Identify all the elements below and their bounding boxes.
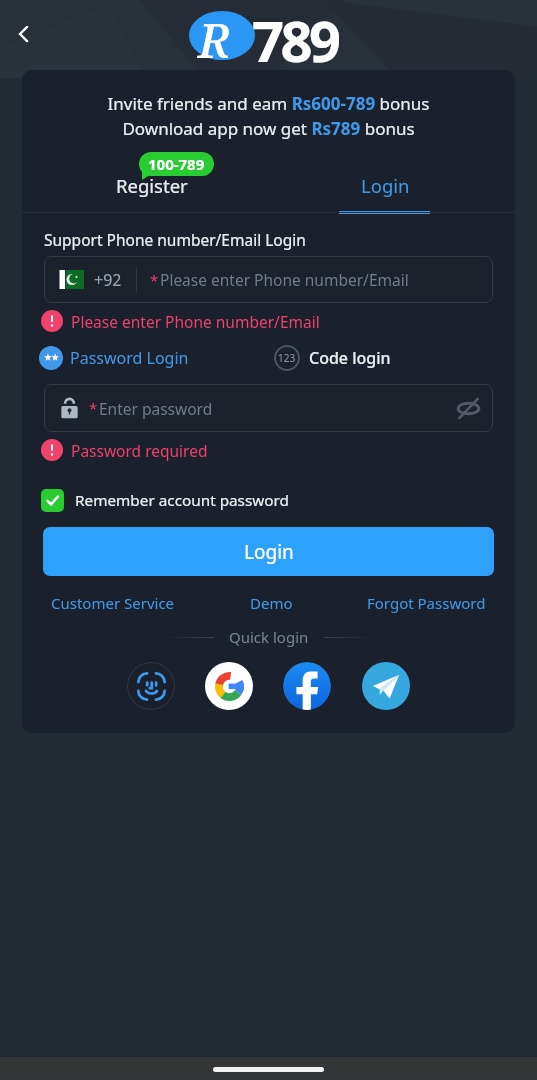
button[interactable]: Customer Service [49, 590, 177, 616]
staticText: Enter password [99, 398, 213, 419]
staticText: Customer Service [51, 593, 175, 613]
staticText: Demo [250, 593, 293, 613]
button[interactable]: 123 [274, 345, 391, 371]
button[interactable]: Forgot Password [365, 590, 488, 616]
button[interactable]: Demo [248, 590, 295, 616]
button[interactable]: Facebook login [283, 662, 331, 710]
staticText: Invite friends and eam Rs600-789 bonus [22, 92, 515, 115]
staticText: Register [116, 173, 188, 198]
button[interactable]: Password Login [39, 345, 189, 371]
staticText: 123 [278, 351, 296, 365]
staticText: +92 [94, 269, 122, 291]
staticText: * [150, 270, 159, 290]
staticText: * [89, 398, 98, 418]
staticText: 789 [252, 2, 338, 78]
staticText: Remember account password [75, 490, 289, 511]
staticText: R [198, 7, 231, 72]
staticText: Login [244, 539, 294, 565]
staticText: Download app now get Rs789 bonus [22, 117, 515, 140]
staticText: 100-789 [148, 154, 205, 174]
staticText: Login [361, 173, 410, 198]
staticText: Password required [71, 440, 208, 461]
button[interactable]: Login [288, 164, 483, 206]
button[interactable]: Login [43, 527, 494, 576]
button[interactable]: Back [4, 14, 44, 54]
staticText: Please enter Phone number/Email [160, 269, 409, 290]
button[interactable]: Google login [205, 662, 253, 710]
button[interactable]: Show password [451, 391, 485, 425]
button[interactable]: * [44, 384, 493, 432]
staticText: Code login [309, 347, 391, 369]
staticText: Support Phone number/Email Login [44, 229, 306, 250]
button[interactable]: Telegram login [362, 662, 410, 710]
button[interactable]: Register [54, 164, 249, 206]
button[interactable]: +92 [44, 256, 493, 303]
staticText: Password Login [70, 347, 189, 369]
button[interactable]: Face ID login [127, 662, 175, 710]
staticText: Please enter Phone number/Email [71, 311, 320, 332]
staticText: Forgot Password [367, 593, 486, 613]
button[interactable]: Remember account password [41, 487, 289, 513]
staticText: Quick login [229, 627, 309, 647]
